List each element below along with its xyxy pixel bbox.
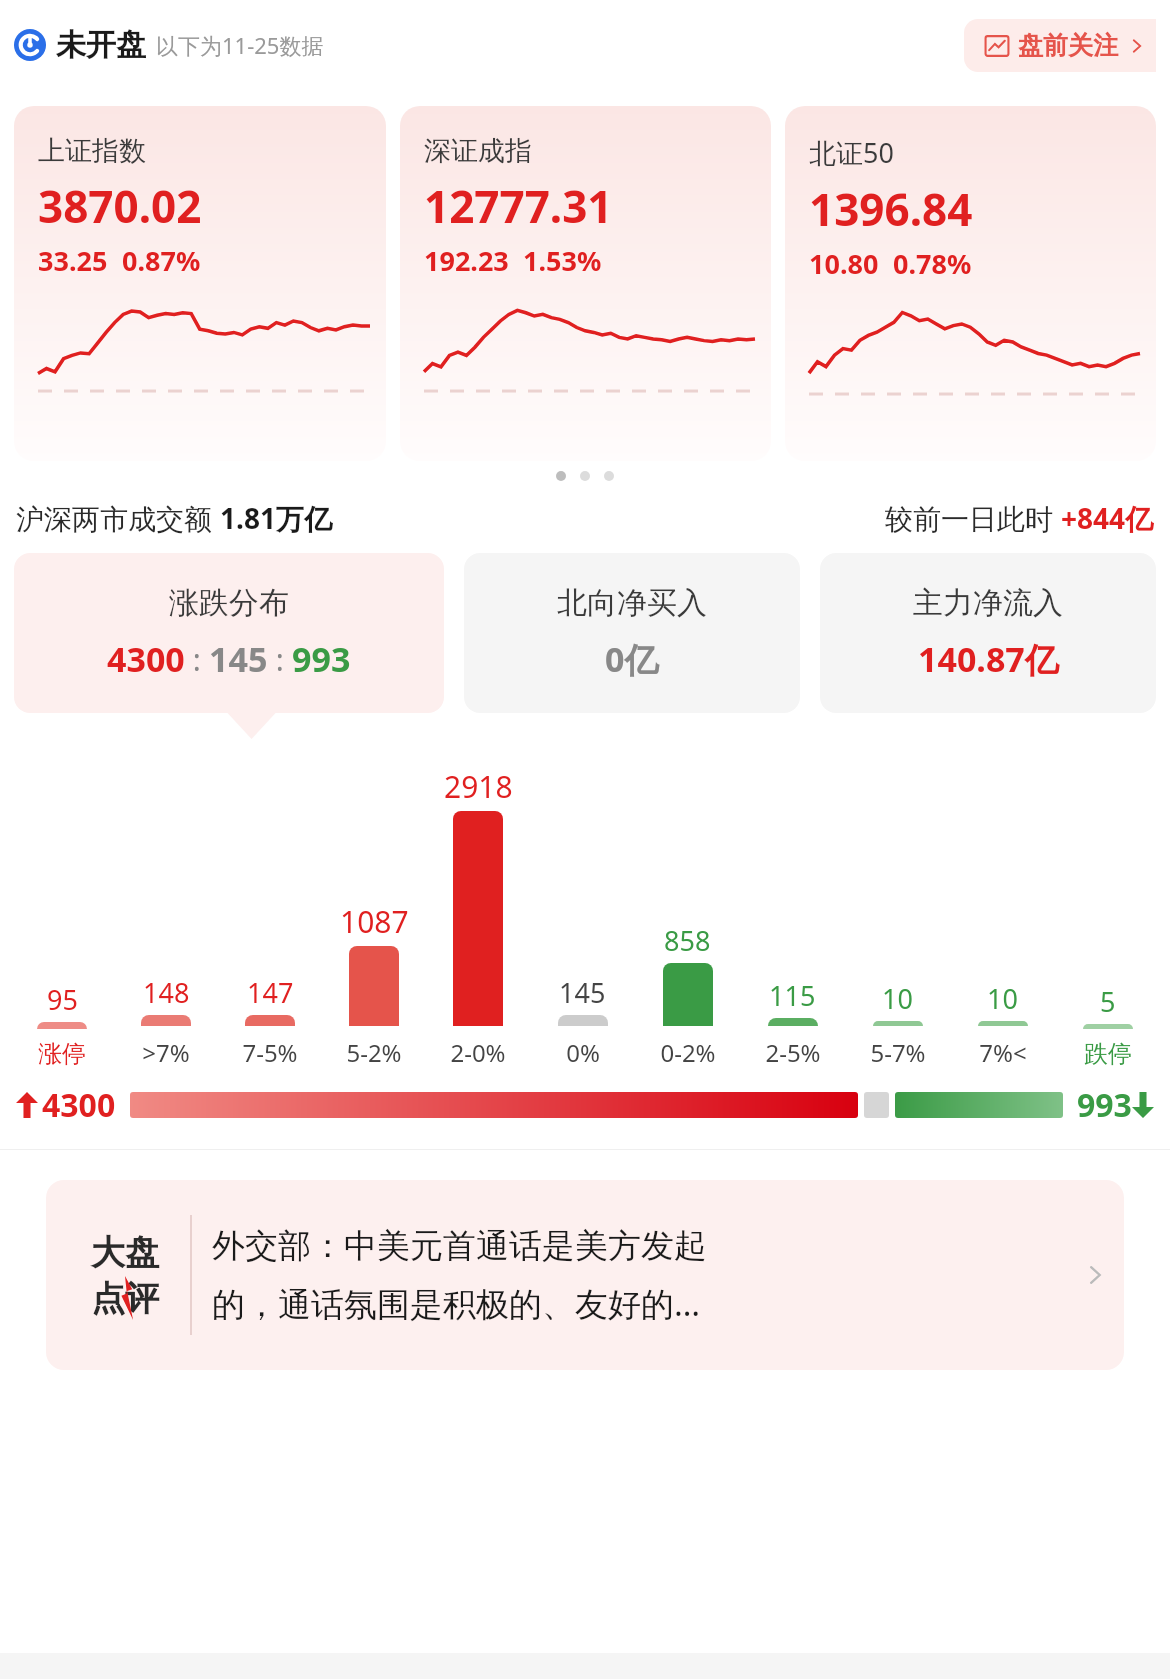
button[interactable]: 北向净买入: [464, 553, 800, 713]
staticText: 大盘: [91, 1231, 159, 1274]
staticText: 北证50: [809, 134, 894, 171]
staticText: 1.53%: [523, 242, 602, 279]
staticText: 0.78%: [893, 245, 972, 282]
staticText: 95: [47, 981, 78, 1018]
staticText: 1396.84: [809, 179, 973, 239]
staticText: 3870.02: [38, 176, 202, 236]
staticText: 跌停: [1084, 1039, 1132, 1069]
staticText: 33.25: [38, 242, 108, 279]
staticText: 145: [559, 974, 606, 1011]
staticText: >7%: [142, 1036, 190, 1069]
staticText: 2-5%: [765, 1036, 821, 1069]
staticText: 盘前关注: [1018, 30, 1118, 61]
other: More: [1082, 1262, 1108, 1288]
staticText: 4300: [42, 1083, 116, 1127]
staticText: 10.80: [809, 245, 879, 282]
staticText: 993: [1077, 1083, 1132, 1127]
button[interactable]: 北证50: [785, 106, 1156, 461]
staticText: 0%: [566, 1036, 600, 1069]
staticText: 148: [143, 974, 190, 1011]
button[interactable]: 涨跌分布: [14, 553, 444, 713]
staticText: 115: [769, 977, 816, 1014]
staticText: 145: [209, 636, 268, 682]
staticText: 0.87%: [122, 242, 201, 279]
staticText: 以下为11-25数据: [156, 30, 324, 60]
staticText: 外交部：中美元首通话是美方发起: [212, 1225, 707, 1267]
staticText: 2918: [444, 766, 513, 807]
button[interactable]: 大盘: [46, 1180, 1124, 1370]
staticText: 涨停: [38, 1039, 86, 1069]
staticText: 147: [247, 974, 294, 1011]
staticText: 1087: [340, 901, 409, 942]
staticText: 858: [664, 922, 711, 959]
staticText: 7%<: [979, 1036, 1027, 1069]
staticText: 12777.31: [424, 176, 613, 236]
staticText: 主力净流入: [913, 584, 1063, 622]
button[interactable]: 盘前关注: [964, 19, 1156, 72]
staticText: :: [185, 639, 209, 680]
staticText: 4300: [107, 636, 185, 682]
staticText: 993: [292, 636, 351, 682]
staticText: 5: [1100, 983, 1116, 1020]
staticText: 的，通话氛围是积极的、友好的…: [212, 1281, 701, 1326]
staticText: 2-0%: [450, 1036, 506, 1069]
staticText: 涨跌分布: [169, 584, 289, 622]
staticText: :: [268, 639, 292, 680]
staticText: 1.81万亿: [220, 499, 332, 537]
staticText: 深证成指: [424, 134, 532, 168]
staticText: 未开盘: [56, 26, 146, 64]
staticText: 点评: [91, 1277, 159, 1320]
staticText: +844亿: [1061, 499, 1154, 537]
staticText: 较前一日此时: [885, 499, 1061, 537]
staticText: 5-2%: [346, 1036, 402, 1069]
button[interactable]: 上证指数: [14, 106, 386, 461]
staticText: 北向净买入: [557, 584, 707, 622]
other: Market status: [14, 29, 46, 61]
button[interactable]: 深证成指: [400, 106, 771, 461]
staticText: 140.87亿: [918, 636, 1059, 682]
staticText: 0亿: [605, 636, 659, 682]
staticText: 上证指数: [38, 134, 146, 168]
staticText: 192.23: [424, 242, 509, 279]
staticText: 10: [882, 980, 913, 1017]
staticText: 沪深两市成交额: [16, 499, 220, 537]
staticText: 5-7%: [870, 1036, 926, 1069]
staticText: 10: [987, 980, 1018, 1017]
button[interactable]: 主力净流入: [820, 553, 1156, 713]
staticText: 7-5%: [242, 1036, 298, 1069]
staticText: 0-2%: [660, 1036, 716, 1069]
